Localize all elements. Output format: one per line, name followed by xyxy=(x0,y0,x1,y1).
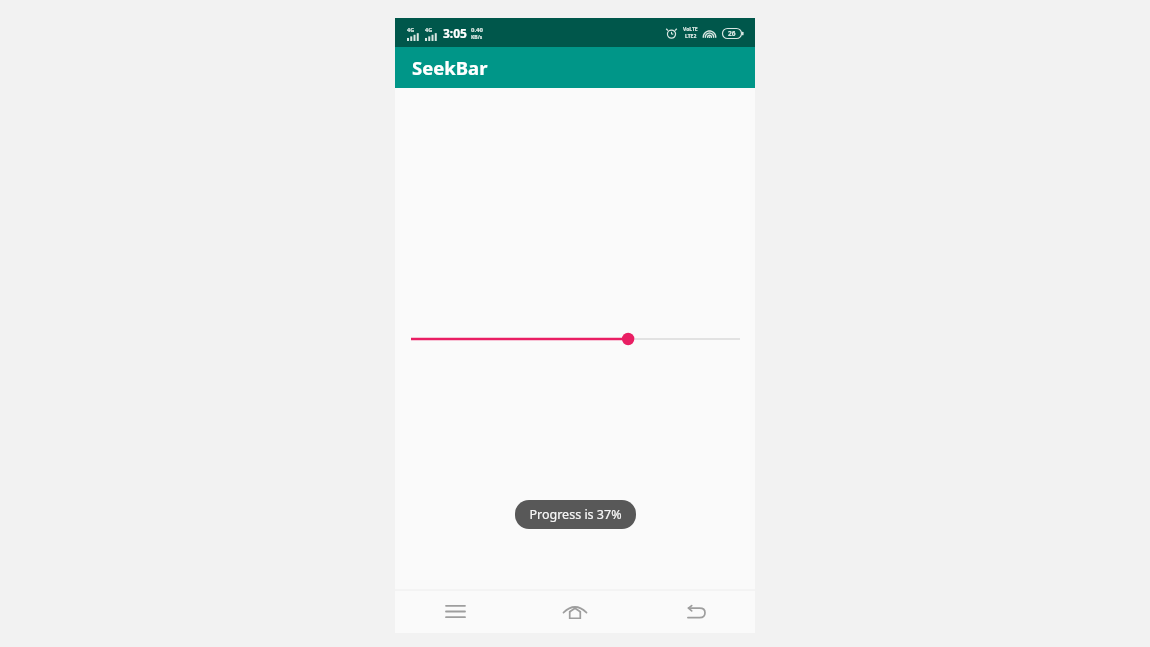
staticText: VoLTE xyxy=(683,26,698,33)
button[interactable]: Home xyxy=(515,590,635,633)
staticText: Progress is 37% xyxy=(529,506,622,523)
staticText: 4G xyxy=(407,26,415,33)
staticText: KB/s xyxy=(471,34,483,41)
button[interactable]: Progress is 37% xyxy=(515,500,636,529)
button[interactable]: Seek bar, progress 37% xyxy=(411,327,740,351)
staticText: 3:05 xyxy=(443,25,467,41)
staticText: SeekBar xyxy=(412,55,488,80)
button[interactable]: Recent apps xyxy=(395,590,515,633)
staticText: 0.40 xyxy=(471,26,483,34)
staticText: 26 xyxy=(728,29,736,38)
staticText: LTE2 xyxy=(685,33,697,40)
staticText: 4G xyxy=(425,26,433,33)
button[interactable]: Back xyxy=(635,590,755,633)
